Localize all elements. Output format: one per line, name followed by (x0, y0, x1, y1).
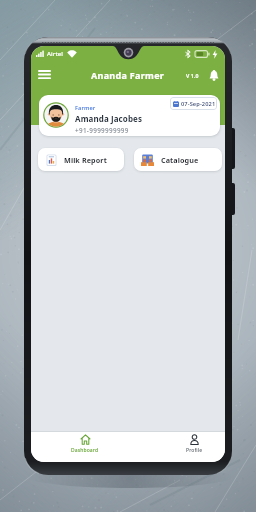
staticText: V 1.0 (186, 72, 199, 79)
staticText: +91-9999999999 (75, 126, 129, 135)
staticText: Milk Report (64, 155, 107, 165)
staticText: Amanda Jacobes (75, 113, 143, 124)
staticText: Profile (186, 447, 203, 454)
staticText: Airtel (47, 50, 64, 58)
staticText: Farmer (75, 104, 96, 112)
button[interactable]: 07-Sep-2021 (170, 97, 217, 110)
staticText: Dashboard (71, 447, 99, 454)
button[interactable]: Farmer (39, 95, 220, 136)
staticText: Catalogue (161, 155, 199, 165)
staticText: Ananda Farmer (91, 69, 165, 81)
button[interactable]: Profile (169, 434, 219, 461)
button[interactable]: Dashboard (60, 434, 110, 461)
button[interactable]: Catalogue (134, 148, 222, 171)
button[interactable] (35, 66, 53, 84)
button[interactable] (208, 69, 220, 81)
staticText: 07-Sep-2021 (181, 100, 216, 108)
button[interactable]: Milk Report (38, 148, 124, 171)
